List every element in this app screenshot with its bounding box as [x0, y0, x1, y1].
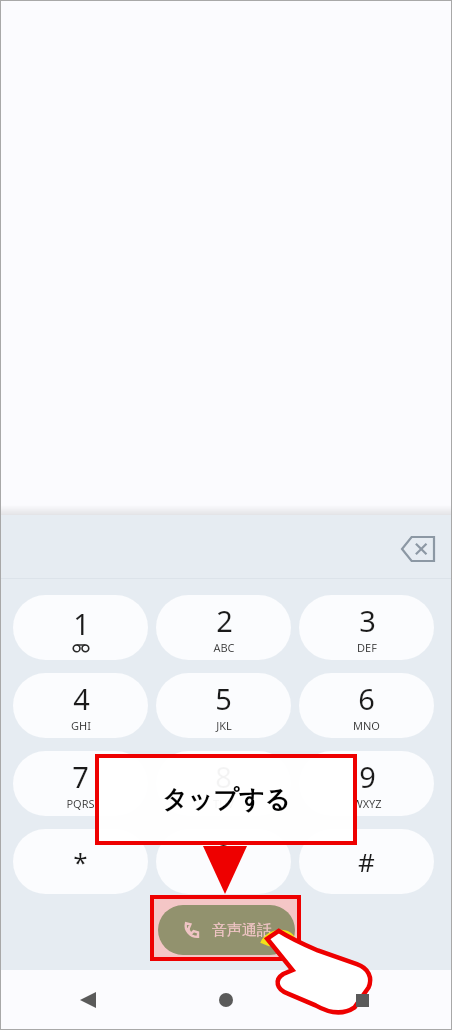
button[interactable]: Back: [74, 986, 102, 1014]
staticText: 9: [359, 757, 376, 796]
staticText: 5: [215, 679, 232, 718]
button[interactable]: 音声通話: [158, 905, 295, 955]
button[interactable]: 4: [13, 673, 148, 738]
button[interactable]: 1: [13, 595, 148, 660]
staticText: +: [220, 874, 227, 889]
button[interactable]: 2: [156, 595, 291, 660]
button[interactable]: 3: [299, 595, 434, 660]
staticText: TUV: [213, 796, 234, 811]
staticText: タップする: [162, 784, 290, 815]
staticText: 3: [359, 601, 376, 640]
staticText: 7: [72, 757, 89, 796]
button[interactable]: 7: [13, 751, 148, 816]
staticText: 4: [73, 679, 90, 718]
button[interactable]: 0: [156, 829, 291, 894]
staticText: 2: [216, 601, 233, 640]
staticText: *: [73, 844, 88, 879]
button[interactable]: 9: [299, 751, 434, 816]
staticText: #: [358, 844, 375, 879]
button[interactable]: #: [299, 829, 434, 894]
button[interactable]: 6: [299, 673, 434, 738]
button[interactable]: 8: [156, 751, 291, 816]
staticText: PQRS: [66, 796, 95, 811]
button[interactable]: Recent apps: [348, 986, 376, 1014]
staticText: 1: [73, 604, 90, 643]
staticText: 0: [215, 835, 232, 874]
button[interactable]: *: [13, 829, 148, 894]
staticText: MNO: [353, 718, 380, 733]
staticText: ABC: [213, 640, 235, 655]
staticText: DEF: [357, 640, 377, 655]
staticText: GHI: [71, 718, 91, 733]
button[interactable]: Home: [212, 986, 240, 1014]
staticText: 6: [358, 679, 375, 718]
staticText: 8: [215, 757, 232, 796]
button[interactable]: 5: [156, 673, 291, 738]
staticText: JKL: [216, 718, 232, 733]
staticText: WXYZ: [352, 796, 382, 811]
button[interactable]: Backspace: [396, 529, 440, 569]
staticText: 音声通話: [212, 921, 272, 940]
